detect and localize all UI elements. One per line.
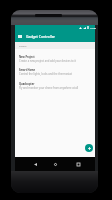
staticText: 12:30: [90, 26, 97, 29]
staticText: New Project: [19, 55, 35, 59]
button[interactable]: Add project: [85, 144, 93, 152]
button[interactable]: New Project: [15, 49, 95, 63]
staticText: Gadget Controller: [26, 34, 56, 39]
button[interactable]: Open navigation drawer: [16, 32, 24, 40]
staticText: Fly and monitor your drone from anywhere…: [19, 86, 79, 90]
button[interactable]: Quadcopter: [15, 76, 95, 90]
staticText: Smart Home: [19, 68, 36, 72]
button[interactable]: Home: [51, 160, 59, 168]
button[interactable]: Smart Home: [15, 62, 95, 76]
staticText: Quadcopter: [19, 82, 35, 86]
staticText: Projects: [19, 45, 27, 48]
button[interactable]: Recent apps: [74, 160, 82, 168]
staticText: Control the lights, locks and the thermo…: [19, 72, 72, 76]
button[interactable]: Back: [31, 160, 39, 168]
staticText: Create a new project and add your device…: [19, 59, 76, 63]
